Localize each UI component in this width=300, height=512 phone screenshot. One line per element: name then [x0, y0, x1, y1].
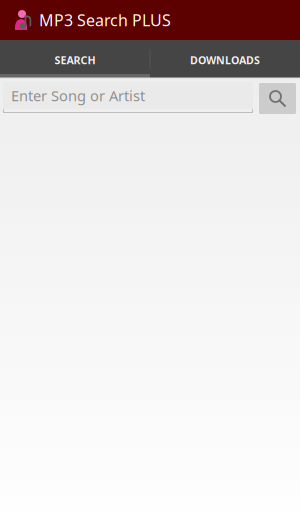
button[interactable]: Search — [259, 83, 296, 114]
staticText: MP3 Search PLUS — [39, 9, 171, 31]
staticText: DOWNLOADS — [190, 53, 260, 67]
button[interactable]: Enter Song or Artist — [3, 82, 253, 113]
button[interactable]: DOWNLOADS — [150, 40, 300, 78]
staticText: Enter Song or Artist — [11, 86, 145, 105]
staticText: SEARCH — [54, 53, 95, 67]
button[interactable]: SEARCH — [0, 40, 150, 78]
